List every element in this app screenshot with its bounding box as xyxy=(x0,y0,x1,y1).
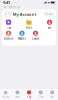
button[interactable]: Pay xyxy=(3,20,14,29)
staticText: Pay xyxy=(27,95,31,99)
staticText: My Account xyxy=(13,12,37,17)
button[interactable]: Orders xyxy=(3,31,14,40)
staticText: Me xyxy=(50,95,54,99)
button[interactable]: My Account xyxy=(2,9,56,19)
staticText: Pay xyxy=(6,26,10,29)
button[interactable]: Scan xyxy=(12,90,23,99)
staticText: 9:41 xyxy=(3,0,10,5)
staticText: MY SERVICES xyxy=(3,5,19,9)
button[interactable]: Wallet xyxy=(16,31,27,40)
staticText: Wallet xyxy=(18,37,26,40)
button[interactable]: Me xyxy=(44,20,55,29)
staticText: Cards xyxy=(32,37,39,40)
staticText: Chat xyxy=(38,95,44,99)
button[interactable]: Chat xyxy=(35,90,46,99)
staticText: Files xyxy=(26,26,32,29)
staticText: Scan xyxy=(15,95,20,99)
staticText: Me xyxy=(47,26,51,29)
staticText: Orders xyxy=(4,37,13,40)
staticText: Home xyxy=(2,95,10,99)
button[interactable]: Pay xyxy=(23,90,35,99)
button[interactable]: Files xyxy=(23,20,34,29)
button[interactable]: Cards xyxy=(30,31,41,40)
button[interactable]: Home xyxy=(0,90,12,99)
button[interactable]: Me xyxy=(46,90,58,99)
staticText: Details xyxy=(44,12,53,16)
